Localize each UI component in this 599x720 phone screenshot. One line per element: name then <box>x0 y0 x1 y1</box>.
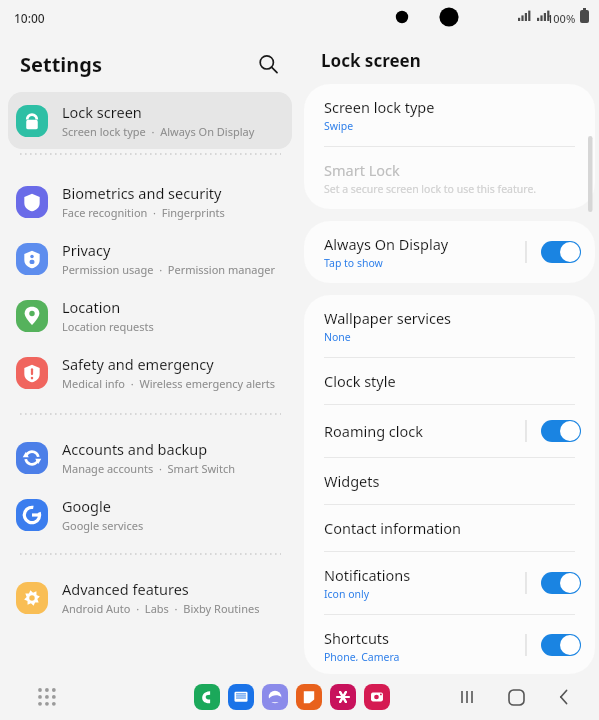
staticText: Manage accounts · Smart Switch <box>62 461 235 476</box>
button[interactable]: Shortcuts <box>304 615 595 674</box>
staticText: Screen lock type · Always On Display <box>62 124 255 139</box>
button[interactable]: Clock style <box>304 358 595 404</box>
button[interactable]: Always On Display toggle <box>541 241 581 263</box>
staticText: Icon only <box>324 587 370 601</box>
button[interactable]: App 3 <box>296 684 322 710</box>
button[interactable]: Advanced features <box>8 569 292 626</box>
staticText: Contact information <box>324 518 462 538</box>
button[interactable]: App 2 <box>262 684 288 710</box>
button[interactable]: Safety and emergency <box>8 344 292 401</box>
button[interactable]: Shortcuts toggle <box>541 634 581 656</box>
button[interactable]: Home <box>503 684 529 710</box>
staticText: Lock screen <box>62 102 142 122</box>
staticText: Smart Lock <box>324 160 400 180</box>
staticText: Accounts and backup <box>62 439 208 459</box>
button[interactable]: Biometrics and security <box>8 173 292 230</box>
staticText: Roaming clock <box>324 421 424 441</box>
staticText: Tap to show <box>324 256 383 270</box>
staticText: Widgets <box>324 471 380 491</box>
button[interactable]: Apps <box>32 682 62 712</box>
button[interactable]: Recents <box>455 684 481 710</box>
button[interactable]: Roaming clock <box>304 405 595 457</box>
button[interactable]: Back <box>551 684 577 710</box>
staticText: Google services <box>62 518 144 533</box>
staticText: Set a secure screen lock to use this fea… <box>324 182 537 196</box>
button[interactable]: App 5 <box>364 684 390 710</box>
button[interactable]: Screen lock type <box>304 84 595 146</box>
staticText: Android Auto · Labs · Bixby Routines <box>62 601 260 616</box>
staticText: Settings <box>20 51 102 78</box>
staticText: 10:00 <box>14 10 45 26</box>
button[interactable]: Google <box>8 486 292 543</box>
button[interactable]: Accounts and backup <box>8 429 292 486</box>
staticText: Safety and emergency <box>62 354 214 374</box>
staticText: Location <box>62 297 121 317</box>
button[interactable]: App 0 <box>194 684 220 710</box>
staticText: Biometrics and security <box>62 183 222 203</box>
button[interactable]: Wallpaper services <box>304 295 595 357</box>
button[interactable]: Notifications toggle <box>541 572 581 594</box>
staticText: Google <box>62 496 111 516</box>
button[interactable]: App 4 <box>330 684 356 710</box>
staticText: Screen lock type <box>324 97 435 117</box>
staticText: Always On Display <box>324 234 449 254</box>
button[interactable]: Notifications <box>304 552 595 614</box>
staticText: Advanced features <box>62 579 189 599</box>
button[interactable]: App 1 <box>228 684 254 710</box>
staticText: Clock style <box>324 371 396 391</box>
staticText: Swipe <box>324 119 354 133</box>
staticText: Privacy <box>62 240 111 260</box>
button[interactable]: Location <box>8 287 292 344</box>
button[interactable]: Lock screen <box>8 92 292 149</box>
staticText: Notifications <box>324 565 411 585</box>
button[interactable]: Privacy <box>8 230 292 287</box>
button[interactable]: Roaming clock toggle <box>541 420 581 442</box>
staticText: Shortcuts <box>324 628 390 648</box>
staticText: Permission usage · Permission manager <box>62 262 275 277</box>
button[interactable]: Contact information <box>304 505 595 551</box>
staticText: 100% <box>547 11 576 26</box>
button[interactable]: Search <box>250 46 286 82</box>
staticText: Face recognition · Fingerprints <box>62 205 225 220</box>
staticText: Wallpaper services <box>324 308 452 328</box>
staticText: Location requests <box>62 319 154 334</box>
staticText: None <box>324 330 351 344</box>
button[interactable]: Widgets <box>304 458 595 504</box>
button[interactable]: Smart Lock <box>304 147 595 209</box>
button[interactable]: Always On Display <box>304 221 595 283</box>
staticText: Medical info · Wireless emergency alerts <box>62 376 276 391</box>
staticText: Lock screen <box>321 49 421 72</box>
staticText: Phone, Camera <box>324 650 400 661</box>
